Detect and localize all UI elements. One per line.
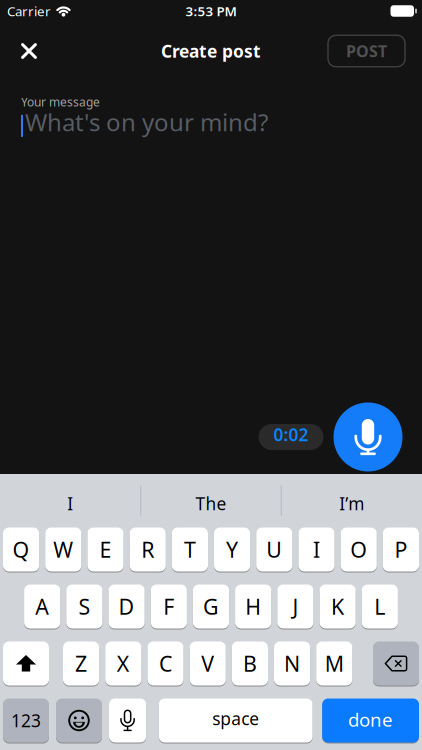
button[interactable]: Y [214, 527, 250, 572]
button[interactable]: Close [9, 31, 49, 71]
staticText: 0:02 [273, 423, 308, 446]
staticText: V [201, 649, 214, 678]
staticText: space [212, 707, 259, 730]
button[interactable]: W [45, 527, 81, 572]
button[interactable]: T [172, 527, 208, 572]
staticText: X [117, 649, 130, 678]
button[interactable]: A [24, 584, 60, 629]
button[interactable]: O [341, 527, 377, 572]
button[interactable]: Q [3, 527, 39, 572]
button[interactable]: K [319, 584, 356, 629]
staticText: K [331, 592, 344, 621]
staticText: C [159, 649, 172, 678]
button[interactable]: U [256, 527, 292, 572]
button[interactable]: Z [63, 641, 99, 686]
button[interactable]: 123 [3, 698, 49, 743]
staticText: U [266, 535, 282, 564]
staticText: B [243, 649, 257, 678]
staticText: 123 [11, 709, 41, 732]
staticText: W [53, 535, 73, 564]
staticText: M [325, 649, 344, 678]
button[interactable]: X [105, 641, 141, 686]
button[interactable]: F [151, 584, 187, 629]
button[interactable]: Dictate [109, 698, 146, 743]
button[interactable]: I [298, 527, 335, 572]
button[interactable]: C [147, 641, 184, 686]
button[interactable]: G [193, 584, 229, 629]
staticText: POST [346, 40, 387, 62]
staticText: 3:53 PM [185, 2, 236, 20]
staticText: The [195, 492, 226, 515]
button[interactable]: The [141, 474, 281, 527]
staticText: I [67, 492, 73, 515]
button[interactable]: POST [328, 35, 405, 67]
staticText: Carrier [7, 2, 51, 20]
staticText: Create post [161, 39, 261, 62]
button[interactable]: R [130, 527, 166, 572]
staticText: A [35, 592, 49, 621]
staticText: O [350, 535, 367, 564]
button[interactable]: J [277, 584, 313, 629]
staticText: L [374, 592, 385, 621]
staticText: R [141, 535, 154, 564]
button[interactable]: I’m [282, 474, 422, 527]
staticText: Q [13, 535, 30, 564]
staticText: G [203, 592, 219, 621]
staticText: H [245, 592, 261, 621]
staticText: D [119, 592, 135, 621]
staticText: J [292, 592, 298, 621]
button[interactable]: P [383, 527, 419, 572]
button[interactable]: N [274, 641, 310, 686]
button[interactable]: Delete [373, 641, 419, 686]
button[interactable]: L [362, 584, 398, 629]
button[interactable]: M [316, 641, 352, 686]
button[interactable]: Emoji [56, 698, 102, 743]
staticText: I’m [339, 492, 364, 515]
button[interactable]: V [190, 641, 226, 686]
staticText: I [313, 535, 320, 564]
staticText: F [163, 592, 174, 621]
button[interactable]: S [66, 584, 102, 629]
button[interactable]: E [87, 527, 124, 572]
button[interactable]: Record [333, 402, 402, 471]
button[interactable]: D [108, 584, 145, 629]
staticText: S [78, 592, 90, 621]
staticText: Your message [21, 94, 100, 110]
button[interactable]: space [159, 698, 313, 743]
staticText: Y [226, 535, 238, 564]
button[interactable]: I [0, 474, 140, 527]
button[interactable]: B [232, 641, 268, 686]
staticText: T [184, 535, 196, 564]
staticText: E [99, 535, 111, 564]
button[interactable]: done [322, 698, 419, 743]
staticText: What's on your mind? [25, 106, 268, 138]
staticText: N [284, 649, 300, 678]
staticText: done [348, 707, 393, 732]
staticText: P [394, 535, 407, 564]
staticText: Z [75, 649, 87, 678]
button[interactable]: Shift [3, 641, 49, 686]
button[interactable]: H [235, 584, 271, 629]
